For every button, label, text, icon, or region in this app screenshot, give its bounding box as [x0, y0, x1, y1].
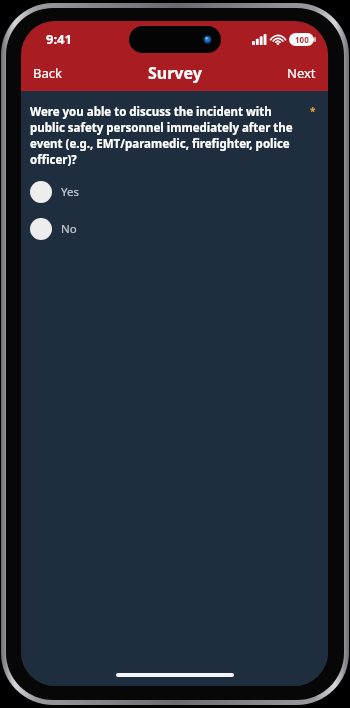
button[interactable]: Back	[21, 60, 70, 86]
button[interactable]: Yes	[30, 180, 79, 204]
staticText: Were you able to discuss the incident wi…	[30, 104, 308, 168]
staticText: 100	[295, 34, 309, 45]
staticText: 9:41	[46, 30, 72, 48]
staticText: Back	[33, 64, 62, 82]
button[interactable]: No	[30, 217, 77, 241]
staticText: Survey	[148, 62, 202, 84]
staticText: No	[61, 221, 77, 237]
staticText: Next	[287, 64, 316, 82]
staticText: *	[310, 104, 316, 118]
button[interactable]: Next	[279, 60, 328, 86]
staticText: Yes	[61, 184, 79, 200]
